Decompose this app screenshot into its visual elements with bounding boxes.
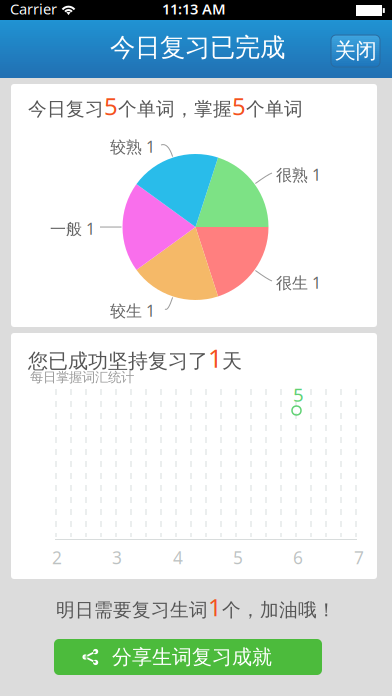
staticText: 5 <box>232 90 246 122</box>
staticText: 明日需要复习生词 <box>56 599 208 621</box>
staticText: 5 <box>293 382 304 407</box>
staticText: 很熟 1 <box>276 164 321 185</box>
button[interactable]: 分享生词复习成就 <box>54 639 322 675</box>
button[interactable]: 关闭 <box>331 35 380 67</box>
staticText: 1 <box>208 591 222 623</box>
staticText: 6 <box>293 546 303 569</box>
staticText: 每日掌握词汇统计 <box>30 369 134 385</box>
staticText: 5 <box>104 90 118 122</box>
staticText: 较熟 1 <box>110 136 155 157</box>
staticText: Carrier <box>10 0 57 18</box>
staticText: 4 <box>173 546 183 569</box>
staticText: 2 <box>52 546 62 569</box>
staticText: 今日复习 <box>28 98 104 120</box>
staticText: 天 <box>222 349 242 373</box>
staticText: 个单词 <box>246 98 303 120</box>
staticText: 分享生词复习成就 <box>112 645 272 669</box>
staticText: 关闭 <box>334 38 376 64</box>
staticText: 3 <box>112 546 122 569</box>
staticText: 您已成功坚持复习了 <box>28 349 208 373</box>
staticText: 较生 1 <box>110 300 155 321</box>
staticText: 5 <box>233 546 243 569</box>
staticText: 今日复习已完成 <box>110 32 285 63</box>
staticText: 7 <box>354 546 364 569</box>
staticText: 一般 1 <box>50 218 95 239</box>
staticText: 11:13 AM <box>162 0 226 18</box>
staticText: 1 <box>208 341 222 375</box>
staticText: 个单词，掌握 <box>118 98 232 120</box>
staticText: 很生 1 <box>276 272 321 293</box>
staticText: 个，加油哦！ <box>222 599 336 621</box>
